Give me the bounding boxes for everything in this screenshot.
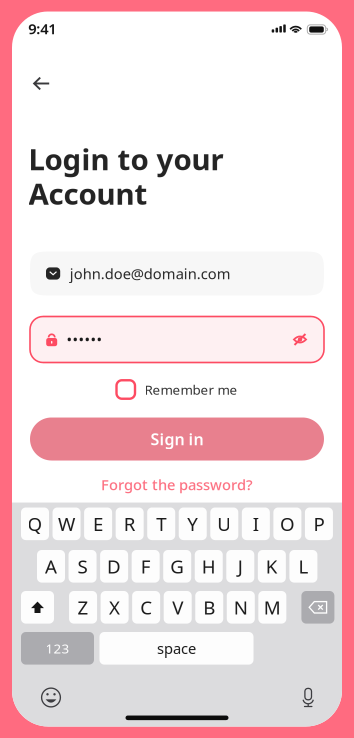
staticText: I [253,511,259,536]
button[interactable]: R [116,507,144,540]
button[interactable]: john.doe@domain.com [30,251,324,295]
button[interactable]: O [273,507,301,540]
button[interactable]: K [258,550,286,583]
button[interactable]: space [99,632,253,665]
staticText: Account [28,174,147,213]
button[interactable]: D [100,550,128,583]
staticText: Login to your [28,139,223,178]
staticText: C [140,595,152,620]
button[interactable]: B [195,591,223,624]
staticText: •••••• [66,330,102,349]
staticText: Q [27,511,42,536]
staticText: G [170,554,184,579]
button[interactable]: U [210,507,238,540]
button[interactable]: Emoji keyboard [40,687,61,708]
button[interactable]: G [163,550,191,583]
staticText: john.doe@domain.com [70,264,231,283]
button[interactable]: S [68,550,96,583]
button[interactable]: Y [179,507,207,540]
button[interactable]: Back [24,67,58,99]
staticText: Remember me [144,381,237,398]
staticText: A [45,554,57,579]
button[interactable]: X [101,591,129,624]
button[interactable]: M [258,591,286,624]
staticText: F [141,554,151,579]
button[interactable]: F [132,550,160,583]
staticText: Forgot the password? [101,475,253,494]
button[interactable]: C [132,591,160,624]
button[interactable]: P [305,507,333,540]
button[interactable]: H [195,550,223,583]
staticText: Y [187,511,198,536]
button[interactable]: W [52,507,80,540]
button[interactable]: Remember me [30,378,324,400]
button[interactable]: Backspace [301,591,334,624]
button[interactable]: N [227,591,255,624]
button[interactable]: L [289,550,317,583]
staticText: K [266,554,278,579]
button[interactable]: Show password [289,328,311,350]
staticText: 123 [45,639,69,657]
staticText: U [217,511,231,536]
button[interactable]: Dictation [302,687,314,707]
button[interactable]: A [37,550,65,583]
staticText: 9:41 [28,19,56,38]
staticText: Z [77,595,88,620]
staticText: S [77,554,87,579]
staticText: M [264,595,281,620]
staticText: N [234,595,248,620]
button[interactable]: Sign in [30,417,324,460]
staticText: H [202,554,216,579]
staticText: V [172,595,183,620]
staticText: P [313,511,324,536]
button[interactable]: 123 [21,632,94,665]
staticText: D [107,554,121,579]
staticText: E [93,511,103,536]
staticText: T [156,511,166,536]
button[interactable]: Z [69,591,97,624]
button[interactable]: V [164,591,192,624]
staticText: W [58,511,75,536]
staticText: L [298,554,308,579]
button[interactable]: Forgot the password? [30,475,324,493]
staticText: space [157,639,196,658]
button[interactable]: J [226,550,254,583]
staticText: Sign in [150,428,203,450]
staticText: X [109,595,120,620]
button[interactable]: I [242,507,270,540]
staticText: R [124,511,136,536]
button[interactable]: Shift [21,591,54,624]
staticText: O [280,511,295,536]
button[interactable]: T [147,507,175,540]
staticText: B [203,595,215,620]
button[interactable]: E [84,507,112,540]
button[interactable]: Q [21,507,49,540]
staticText: J [238,554,243,579]
